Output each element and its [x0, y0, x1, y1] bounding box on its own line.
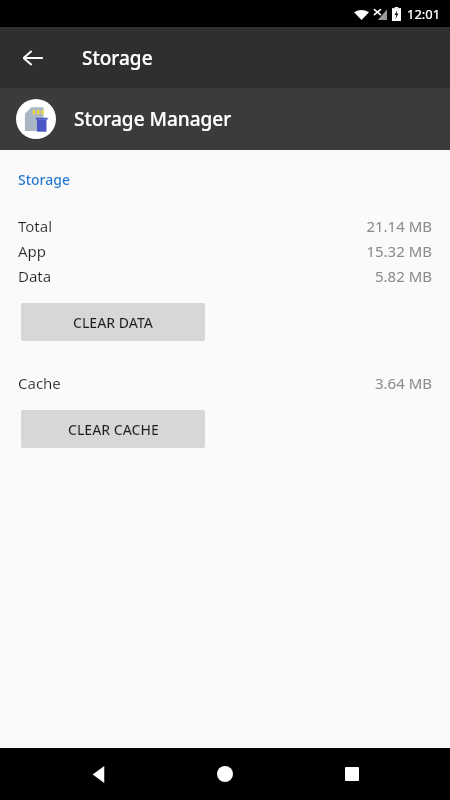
staticText: Cache [18, 373, 61, 393]
staticText: Storage [18, 170, 70, 189]
button[interactable]: Back [71, 748, 127, 800]
button[interactable]: Recents [324, 748, 380, 800]
staticText: App [18, 241, 47, 261]
button[interactable]: Home [197, 748, 253, 800]
staticText: CLEAR CACHE [68, 420, 159, 439]
button[interactable]: CLEAR CACHE [21, 410, 205, 448]
button[interactable]: Back [10, 35, 56, 81]
staticText: CLEAR DATA [73, 313, 154, 332]
staticText: Storage Manager [74, 106, 232, 132]
staticText: Total [18, 216, 53, 236]
staticText: 5.82 MB [374, 266, 432, 286]
button[interactable]: CLEAR DATA [21, 303, 205, 341]
staticText: Storage [82, 45, 153, 71]
staticText: 3.64 MB [374, 373, 432, 393]
staticText: 12:01 [407, 5, 441, 23]
staticText: Data [18, 266, 52, 286]
staticText: 21.14 MB [366, 216, 432, 236]
button[interactable]: Storage Manager [0, 88, 450, 150]
staticText: 15.32 MB [366, 241, 432, 261]
